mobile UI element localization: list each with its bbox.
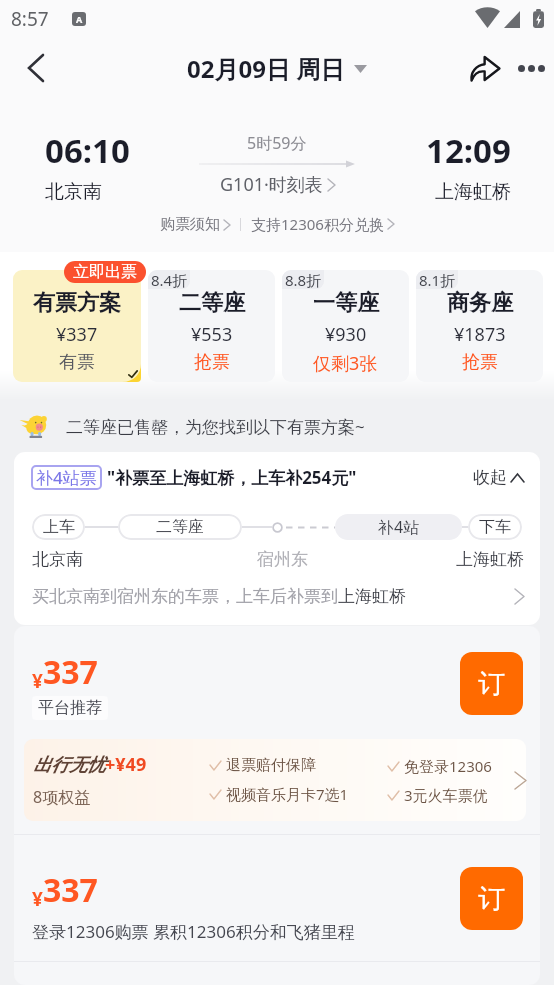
- button[interactable]: 二等座: [118, 514, 242, 540]
- staticText: A: [76, 13, 83, 25]
- button[interactable]: More options: [508, 45, 554, 91]
- button[interactable]: Share: [462, 45, 508, 91]
- staticText: 8.4折: [151, 270, 188, 289]
- staticText: 上海虹桥: [435, 180, 511, 204]
- button[interactable]: 购票须知: [160, 215, 230, 234]
- staticText: 上车: [43, 517, 75, 537]
- button[interactable]: 补4站: [335, 514, 462, 540]
- button[interactable]: 上车: [32, 514, 85, 540]
- button[interactable]: 订: [460, 652, 523, 715]
- button[interactable]: 买北京南到宿州东的车票，上车后补票到: [32, 586, 524, 607]
- staticText: 8:57: [11, 6, 49, 32]
- staticText: 上海虹桥: [338, 586, 406, 607]
- staticText: 抢票: [194, 351, 230, 374]
- staticText: 订: [478, 882, 505, 916]
- staticText: 12:09: [426, 128, 511, 173]
- staticText: 宿州东: [257, 549, 308, 570]
- staticText: 有票: [59, 351, 95, 374]
- staticText: 06:10: [45, 128, 130, 173]
- staticText: 下车: [479, 517, 511, 537]
- button[interactable]: 订: [460, 867, 523, 930]
- button[interactable]: 商务座: [416, 270, 543, 382]
- staticText: 退票赔付保障: [226, 756, 316, 775]
- staticText: 有票方案: [33, 289, 121, 317]
- staticText: 收起: [473, 467, 507, 488]
- staticText: 订: [478, 667, 505, 701]
- staticText: ¥553: [191, 322, 233, 347]
- staticText: 北京南: [32, 549, 83, 570]
- staticText: 5时59分: [247, 132, 307, 154]
- staticText: 补4站: [378, 516, 420, 538]
- staticText: 免登录12306: [404, 756, 492, 776]
- staticText: "补票至上海虹桥，上车补254元": [107, 466, 357, 489]
- staticText: 一等座: [313, 289, 379, 317]
- button[interactable]: 下车: [468, 514, 522, 540]
- staticText: 商务座: [447, 289, 513, 317]
- staticText: 平台推荐: [38, 698, 102, 718]
- staticText: 购票须知: [160, 215, 220, 234]
- staticText: 上海虹桥: [456, 549, 524, 570]
- button[interactable]: 有票方案: [13, 270, 141, 382]
- staticText: 337: [43, 650, 98, 694]
- staticText: 337: [43, 868, 98, 912]
- button[interactable]: 支持12306积分兑换: [251, 214, 394, 234]
- staticText: G101·时刻表: [220, 172, 323, 197]
- button[interactable]: G101·时刻表: [220, 172, 335, 197]
- staticText: 3元火车票优: [404, 785, 488, 805]
- staticText: 8项权益: [33, 786, 91, 808]
- staticText: 8.8折: [285, 270, 322, 289]
- staticText: 二等座已售罄，为您找到以下有票方案~: [66, 415, 365, 438]
- staticText: 8.1折: [419, 270, 456, 289]
- button[interactable]: Back: [0, 38, 71, 98]
- staticText: 视频音乐月卡7选1: [226, 784, 349, 804]
- staticText: 北京南: [45, 180, 102, 204]
- staticText: 补4站票: [36, 466, 97, 489]
- staticText: 出行无忧: [33, 754, 105, 777]
- button[interactable]: 收起: [473, 467, 524, 488]
- staticText: 二等座: [179, 289, 245, 317]
- button[interactable]: 出行无忧: [24, 739, 526, 821]
- staticText: 登录12306购票 累积12306积分和飞猪里程: [32, 920, 355, 943]
- staticText: ¥1873: [454, 322, 506, 347]
- staticText: 立即出票: [73, 262, 137, 282]
- staticText: 02月09日 周日: [187, 52, 345, 85]
- staticText: ¥: [32, 668, 43, 694]
- staticText: 抢票: [462, 351, 498, 374]
- staticText: 支持12306积分兑换: [251, 214, 384, 234]
- button[interactable]: 02月09日 周日: [187, 52, 367, 85]
- staticText: ¥337: [56, 322, 98, 347]
- staticText: ¥930: [325, 322, 367, 347]
- button[interactable]: 二等座: [148, 270, 275, 382]
- button[interactable]: 一等座: [282, 270, 409, 382]
- staticText: ¥: [32, 886, 43, 912]
- staticText: 买北京南到宿州东的车票，上车后补票到: [32, 586, 338, 607]
- staticText: 二等座: [156, 517, 204, 537]
- staticText: 仅剩3张: [313, 351, 378, 376]
- staticText: +¥49: [105, 752, 147, 777]
